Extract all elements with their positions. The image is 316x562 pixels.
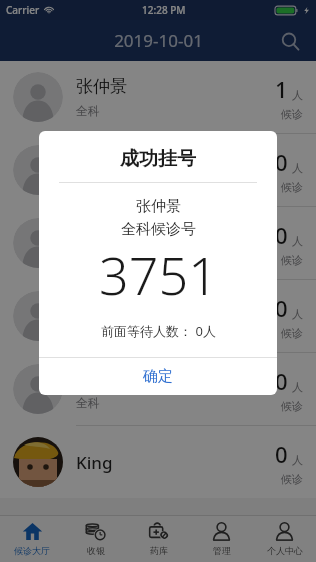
button[interactable]: 孙医 bbox=[0, 280, 316, 352]
staticText: 全科 bbox=[76, 103, 100, 118]
staticText: 孙医 bbox=[76, 295, 110, 316]
staticText: 0 bbox=[275, 293, 288, 323]
staticText: 候诊 bbox=[281, 253, 303, 267]
button[interactable]: 李医 bbox=[0, 353, 316, 425]
staticText: 全科候诊号 bbox=[121, 220, 196, 239]
staticText: 人 bbox=[292, 380, 303, 394]
staticText: 人 bbox=[292, 88, 303, 102]
button[interactable]: 管理 bbox=[190, 516, 253, 562]
button[interactable]: 张仲景 bbox=[0, 61, 316, 133]
staticText: 个人中心 bbox=[267, 545, 303, 556]
button[interactable]: 确定 bbox=[39, 358, 277, 395]
staticText: 3751 bbox=[99, 239, 218, 310]
button[interactable]: King bbox=[0, 426, 316, 498]
staticText: 1 bbox=[275, 74, 288, 104]
staticText: Carrier bbox=[6, 3, 40, 17]
staticText: 人 bbox=[292, 234, 303, 248]
button[interactable]: 药库 bbox=[127, 516, 190, 562]
staticText: 人 bbox=[292, 161, 303, 175]
staticText: 候诊大厅 bbox=[14, 545, 50, 556]
button[interactable]: 收银 bbox=[64, 516, 127, 562]
staticText: 前面等待人数： 0人 bbox=[101, 322, 216, 340]
staticText: 候诊 bbox=[281, 107, 303, 121]
staticText: 候诊 bbox=[281, 399, 303, 413]
staticText: 全科 bbox=[76, 395, 100, 410]
staticText: 人 bbox=[292, 453, 303, 467]
staticText: 0 bbox=[275, 439, 288, 469]
staticText: 候诊 bbox=[281, 326, 303, 340]
button[interactable]: 候诊大厅 bbox=[0, 516, 64, 562]
staticText: 张仲景 bbox=[76, 76, 127, 97]
button[interactable]: Search bbox=[276, 27, 304, 55]
button[interactable]: 王医 bbox=[0, 134, 316, 206]
staticText: 人 bbox=[292, 307, 303, 321]
staticText: 12:28 PM bbox=[142, 3, 186, 17]
staticText: 0 bbox=[275, 366, 288, 396]
staticText: 张仲景 bbox=[136, 197, 181, 216]
staticText: 2019-10-01 bbox=[114, 29, 203, 52]
staticText: 确定 bbox=[143, 367, 173, 386]
staticText: 候诊 bbox=[281, 180, 303, 194]
staticText: 0 bbox=[275, 220, 288, 250]
staticText: 收银 bbox=[87, 545, 105, 556]
button[interactable]: 个人中心 bbox=[253, 516, 316, 562]
staticText: 药库 bbox=[150, 545, 168, 556]
staticText: 管理 bbox=[213, 545, 231, 556]
staticText: King bbox=[76, 451, 113, 474]
staticText: 0 bbox=[275, 147, 288, 177]
button[interactable]: 赵医 bbox=[0, 207, 316, 279]
staticText: 候诊 bbox=[281, 472, 303, 486]
staticText: 成功挂号 bbox=[120, 147, 196, 171]
staticText: 全科 bbox=[76, 176, 100, 191]
